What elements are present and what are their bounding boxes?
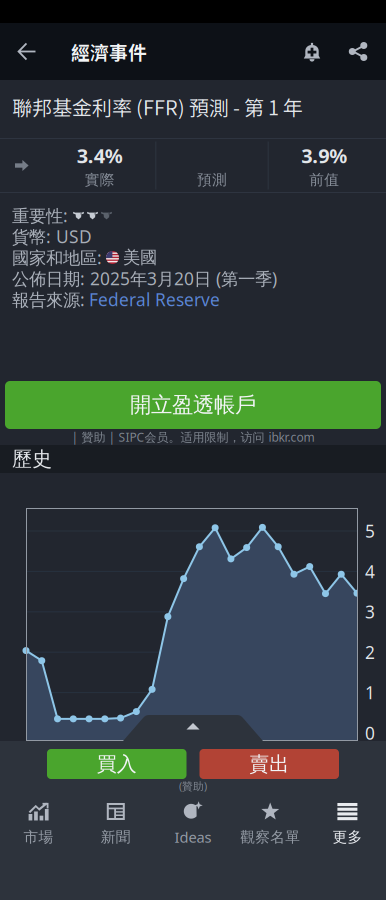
button[interactable]: 分享 <box>335 23 386 79</box>
staticText: 公佈日期: 2025年3月20日 (第一季) <box>12 267 277 290</box>
staticText: 重要性: <box>12 204 68 227</box>
staticText: 經濟事件 <box>71 38 147 65</box>
staticText: 1 <box>365 681 375 704</box>
button[interactable]: 買入 <box>47 749 186 779</box>
staticText: 觀察名單 <box>240 828 300 846</box>
button[interactable]: 賣出 <box>199 749 339 779</box>
staticText: 開立盈透帳戶 <box>130 392 256 418</box>
staticText: 貨幣: USD <box>12 225 92 248</box>
staticText: Federal Reserve <box>89 288 220 311</box>
staticText: 賣出 <box>249 752 289 776</box>
staticText: 買入 <box>97 752 137 776</box>
staticText: 美國 <box>123 247 157 268</box>
button[interactable]: 更多 <box>309 793 386 855</box>
staticText: 國家和地區: <box>12 246 102 269</box>
staticText: 前值 <box>309 171 339 189</box>
button[interactable]: 新聞 <box>77 793 154 855</box>
staticText: 實際 <box>85 171 115 189</box>
staticText: 3.4% <box>77 142 123 169</box>
staticText: 新聞 <box>101 828 131 846</box>
staticText: 2 <box>365 641 375 664</box>
staticText: 報告來源: <box>12 288 85 311</box>
staticText: 0 <box>365 721 375 744</box>
button[interactable]: 觀察名單 <box>232 793 309 855</box>
staticText: 3 <box>365 600 375 623</box>
staticText: 3.9% <box>301 142 347 169</box>
staticText: 更多 <box>332 828 362 846</box>
staticText: (贊助) <box>179 779 207 793</box>
staticText: 5 <box>365 519 375 542</box>
staticText: 預測 <box>197 171 227 189</box>
staticText: 歷史 <box>12 447 52 471</box>
button[interactable]: 市場 <box>0 793 77 855</box>
staticText: 4 <box>365 560 375 583</box>
button[interactable]: 開立盈透帳戶 <box>5 381 381 429</box>
button[interactable]: Federal Reserve <box>89 288 220 311</box>
staticText: | 贊助 | SIPC会员。适用限制，访问 ibkr.com <box>71 429 314 445</box>
staticText: 聯邦基金利率 (FFR) 預測 - 第 1 年 <box>12 92 303 121</box>
staticText: Ideas <box>174 827 211 847</box>
staticText: 市場 <box>24 828 54 846</box>
button[interactable]: 返回 <box>0 23 50 79</box>
button[interactable]: Ideas <box>154 792 232 856</box>
button[interactable]: 新增提醒 <box>289 23 335 79</box>
